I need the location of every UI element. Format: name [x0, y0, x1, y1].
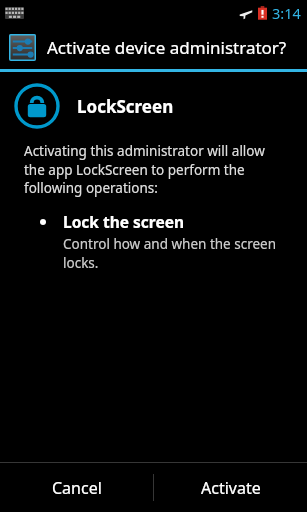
staticText: LockScreen: [77, 95, 174, 118]
staticText: Lock the screen: [63, 211, 185, 232]
other: Battery low: [258, 6, 267, 20]
staticText: Control how and when the screen locks.: [63, 235, 283, 271]
staticText: Activating this administrator will allow…: [24, 142, 287, 196]
staticText: Activate device administrator?: [47, 36, 287, 59]
staticText: 3:14: [272, 3, 301, 23]
staticText: Activate: [201, 477, 261, 499]
other: Keyboard: [5, 7, 24, 19]
other: Airplane mode: [239, 6, 253, 20]
button[interactable]: Activate: [154, 463, 307, 512]
staticText: Cancel: [52, 477, 102, 499]
button[interactable]: Cancel: [0, 463, 153, 512]
